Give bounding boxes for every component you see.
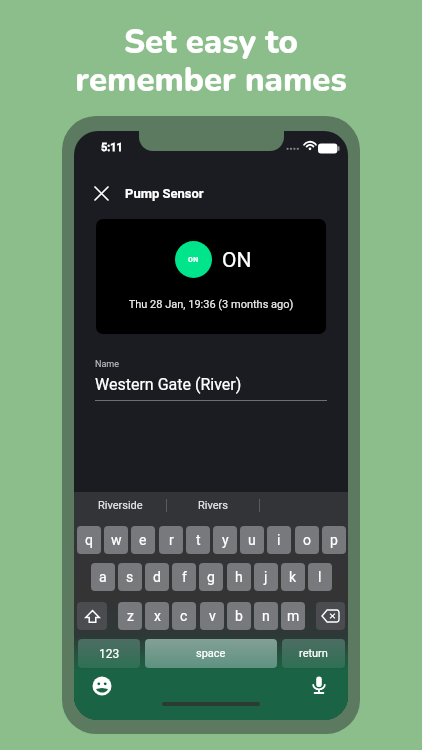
staticText: Thu 28 Jan, 19:36 (3 months ago) [96, 298, 326, 311]
button[interactable]: ON [96, 219, 326, 334]
button[interactable]: t [186, 526, 210, 554]
button[interactable]: 123 [78, 639, 140, 668]
staticText: c [180, 608, 188, 624]
button[interactable]: f [172, 563, 196, 591]
staticText: Pump Sensor [125, 186, 204, 201]
staticText: j [264, 569, 268, 585]
staticText: t [196, 532, 201, 548]
button[interactable]: g [199, 563, 223, 591]
button[interactable]: Backspace [316, 602, 345, 630]
staticText: ON [188, 256, 199, 264]
button[interactable]: n [254, 602, 278, 630]
staticText: h [235, 569, 243, 585]
staticText: v [209, 608, 216, 624]
button[interactable]: y [213, 526, 237, 554]
staticText: m [287, 608, 300, 624]
button[interactable]: p [322, 526, 346, 554]
staticText: Set easy to remember names [75, 20, 347, 103]
staticText: s [126, 569, 134, 585]
button[interactable]: Voice input [309, 675, 329, 695]
staticText: e [139, 532, 147, 548]
staticText: Western Gate (River) [95, 375, 242, 394]
staticText: Rivers [198, 499, 228, 512]
button[interactable]: b [227, 602, 251, 630]
button[interactable]: o [295, 526, 319, 554]
button[interactable]: z [118, 602, 142, 630]
button[interactable]: k [281, 563, 305, 591]
staticText: y [222, 532, 229, 548]
button[interactable]: h [227, 563, 251, 591]
button[interactable]: m [281, 602, 305, 630]
staticText: 5:11 [101, 141, 123, 154]
button[interactable]: j [254, 563, 278, 591]
button[interactable]: l [308, 563, 332, 591]
staticText: p [330, 532, 338, 548]
staticText: b [235, 608, 243, 624]
staticText: 123 [99, 647, 120, 661]
staticText: space [196, 647, 226, 660]
button[interactable]: space [145, 639, 277, 668]
button[interactable]: s [118, 563, 142, 591]
staticText: w [111, 532, 122, 548]
button[interactable]: Emoji [92, 676, 112, 696]
staticText: a [99, 569, 107, 585]
button[interactable]: a [91, 563, 115, 591]
staticText: l [318, 569, 322, 585]
button[interactable]: ON [175, 241, 212, 278]
staticText: Name [95, 359, 119, 370]
staticText: d [153, 569, 161, 585]
button[interactable]: w [104, 526, 128, 554]
button[interactable]: q [77, 526, 101, 554]
staticText: u [248, 532, 256, 548]
button[interactable]: Close [88, 180, 114, 206]
staticText: return [299, 647, 328, 660]
staticText: n [262, 608, 270, 624]
button[interactable]: e [131, 526, 155, 554]
button[interactable]: return [282, 639, 345, 668]
staticText: r [169, 532, 174, 548]
staticText: z [127, 608, 134, 624]
staticText: k [289, 569, 297, 585]
button[interactable]: v [200, 602, 224, 630]
button[interactable]: Rivers [167, 492, 259, 519]
staticText: f [182, 569, 187, 585]
staticText: i [277, 532, 281, 548]
staticText: x [154, 608, 161, 624]
button[interactable]: x [145, 602, 169, 630]
staticText: o [303, 532, 311, 548]
button[interactable]: Shift [77, 602, 107, 630]
staticText: ON [222, 248, 252, 273]
button[interactable]: u [240, 526, 264, 554]
button[interactable]: r [159, 526, 183, 554]
staticText: q [85, 532, 93, 548]
staticText: g [207, 569, 215, 585]
button[interactable]: d [145, 563, 169, 591]
staticText: Riverside [98, 499, 143, 512]
button[interactable]: i [267, 526, 291, 554]
button[interactable]: c [172, 602, 196, 630]
button[interactable]: Riverside [74, 492, 166, 519]
